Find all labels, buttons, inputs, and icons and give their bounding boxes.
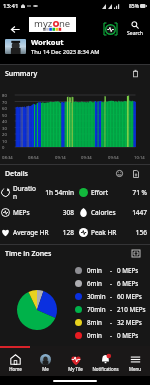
button[interactable]: Notifications xyxy=(90,348,120,376)
button[interactable]: 6min xyxy=(75,277,150,290)
staticText: myz xyxy=(34,17,53,30)
staticText: 1h 54min xyxy=(45,188,74,197)
button[interactable]: Back xyxy=(4,12,26,46)
staticText: - xyxy=(110,292,113,301)
button[interactable]: Calories xyxy=(79,202,147,222)
button[interactable]: 8min xyxy=(75,316,150,329)
staticText: 210 MEPs xyxy=(117,305,146,314)
staticText: MEPs xyxy=(13,208,61,217)
staticText: 30min xyxy=(87,292,107,301)
staticText: 1447 xyxy=(132,208,147,217)
button[interactable]: Search xyxy=(124,12,146,46)
staticText: Home xyxy=(9,366,22,372)
staticText: 70min xyxy=(87,305,107,314)
staticText: 60 xyxy=(2,106,7,112)
staticText: 0min xyxy=(87,266,107,275)
staticText: 08:54 xyxy=(28,155,39,161)
staticText: 85% xyxy=(129,3,139,10)
staticText: - xyxy=(110,331,113,340)
button[interactable]: 30min xyxy=(75,290,150,303)
button[interactable]: MEPs xyxy=(1,202,74,222)
button[interactable]: 70min xyxy=(75,303,150,316)
staticText: - xyxy=(110,266,113,275)
button[interactable]: Home xyxy=(0,348,30,376)
staticText: Time in Zones xyxy=(5,249,52,259)
staticText: Average HR xyxy=(13,228,61,237)
button[interactable]: Expand chart xyxy=(130,248,141,259)
staticText: 6 MEPs xyxy=(117,279,139,288)
staticText: - xyxy=(110,279,113,288)
staticText: 30 xyxy=(2,126,7,132)
button[interactable]: MyZone xyxy=(29,17,76,32)
staticText: 60 MEPs xyxy=(117,292,142,301)
staticText: ne xyxy=(59,17,71,30)
staticText: 09:54 xyxy=(108,155,119,161)
button[interactable]: Peak HR xyxy=(79,222,147,242)
button[interactable]: Delete workout xyxy=(130,68,141,79)
staticText: 50 xyxy=(2,113,7,119)
button[interactable]: Average HR xyxy=(1,222,74,242)
staticText: 70 xyxy=(2,100,7,106)
button[interactable]: Duratio n xyxy=(1,182,74,202)
staticText: Peak HR xyxy=(91,228,134,237)
button[interactable]: My Tile xyxy=(60,348,90,376)
staticText: 8min xyxy=(87,318,107,327)
staticText: Menu xyxy=(129,366,141,372)
staticText: Details xyxy=(5,169,29,179)
staticText: Workout xyxy=(31,37,64,47)
staticText: 0 xyxy=(2,145,5,151)
button[interactable]: 0min xyxy=(75,264,150,277)
staticText: My Tile xyxy=(68,366,83,372)
staticText: 40 xyxy=(2,119,7,125)
staticText: 08:34 xyxy=(2,155,13,161)
staticText: 09:14 xyxy=(55,155,66,161)
staticText: 0 MEPs xyxy=(117,331,139,340)
button[interactable]: 0min xyxy=(75,329,150,342)
staticText: Summary xyxy=(5,69,38,79)
staticText: 71 % xyxy=(132,188,147,197)
staticText: 20 xyxy=(2,132,7,138)
staticText: 308 xyxy=(62,208,74,217)
button[interactable]: Effort xyxy=(79,182,147,202)
staticText: 156 xyxy=(135,228,147,237)
staticText: 0 MEPs xyxy=(117,266,139,275)
staticText: 80 xyxy=(2,93,7,99)
staticText: 128 xyxy=(62,228,74,237)
staticText: Search xyxy=(127,30,143,37)
staticText: Duratio n xyxy=(13,184,44,201)
button[interactable]: Me xyxy=(30,348,60,376)
staticText: 09:34 xyxy=(81,155,92,161)
staticText: 32 MEPs xyxy=(117,318,142,327)
staticText: 10 xyxy=(2,139,7,145)
button[interactable]: My status xyxy=(104,12,117,46)
button[interactable]: Add note xyxy=(130,168,141,179)
staticText: 13:41 xyxy=(3,2,19,10)
staticText: Me xyxy=(42,366,49,372)
button[interactable]: Rate workout xyxy=(114,168,125,179)
staticText: Calories xyxy=(91,208,131,217)
staticText: 0min xyxy=(87,331,107,340)
staticText: 6min xyxy=(87,279,107,288)
staticText: - xyxy=(110,305,113,314)
staticText: Effort xyxy=(91,188,131,197)
staticText: Notifications xyxy=(92,366,119,372)
button[interactable]: Menu xyxy=(120,348,150,376)
staticText: Thu 14 Dec 2023 8:34 AM xyxy=(31,48,100,55)
staticText: - xyxy=(110,318,113,327)
staticText: 10:14 xyxy=(134,155,145,161)
